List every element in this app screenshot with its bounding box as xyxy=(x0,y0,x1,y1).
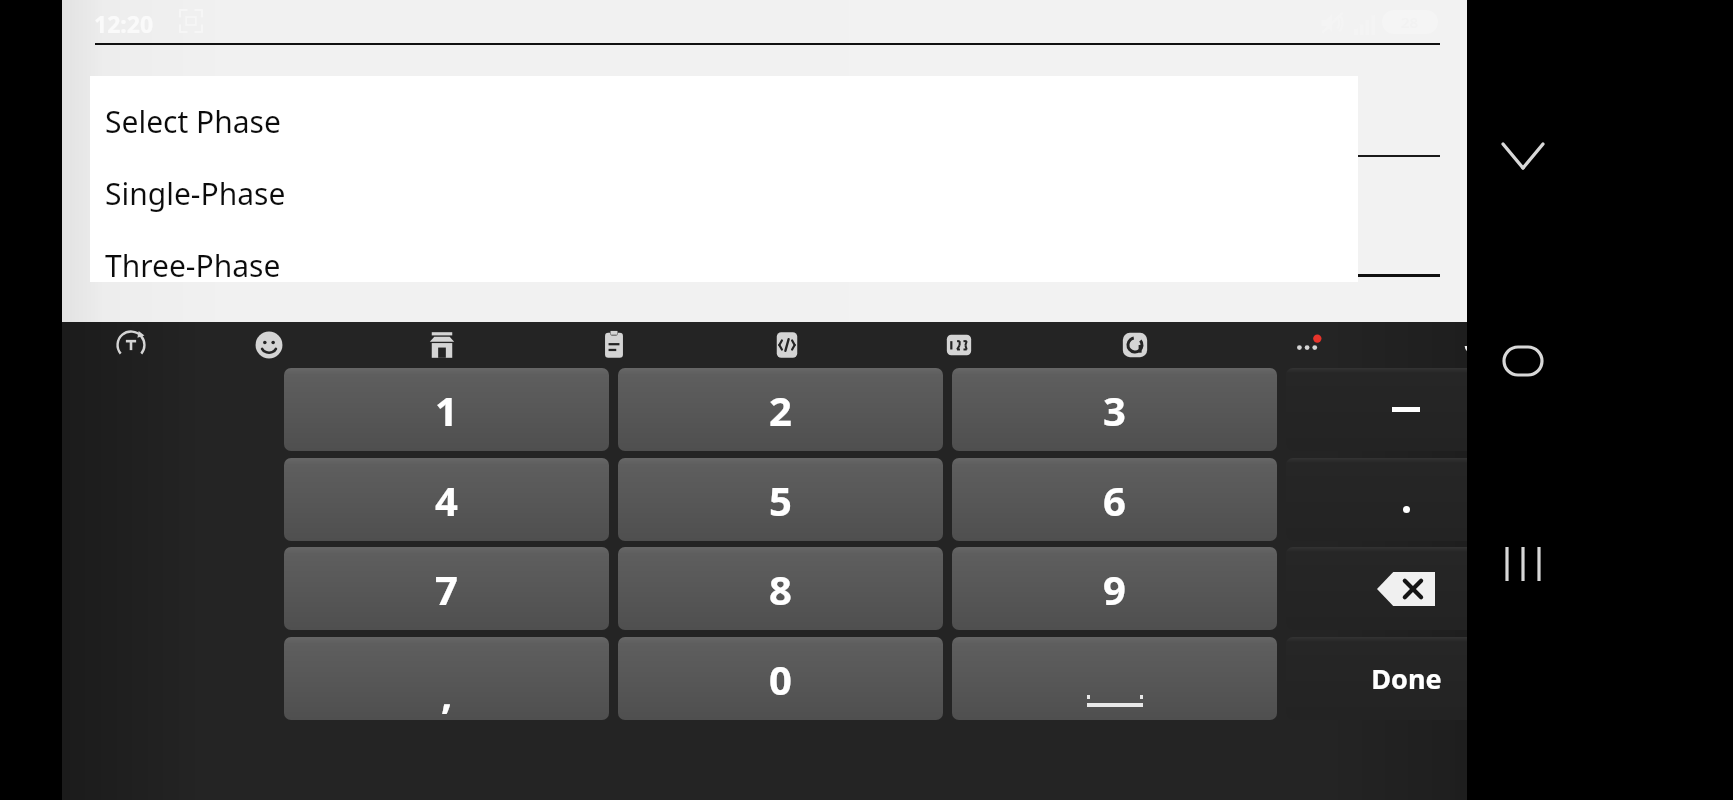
button[interactable]: Home xyxy=(1487,325,1559,397)
button[interactable]: 7 xyxy=(284,547,609,630)
staticText: 2 xyxy=(769,383,792,437)
button[interactable]: Numbers xyxy=(938,324,980,366)
button[interactable] xyxy=(1286,368,1526,451)
button[interactable]: Assistant xyxy=(1114,324,1156,366)
button[interactable]: 1 xyxy=(284,368,609,451)
button[interactable]: Space xyxy=(952,637,1277,720)
staticText: 9 xyxy=(1103,562,1126,616)
staticText: 3 xyxy=(1103,383,1126,437)
staticText: Done xyxy=(1371,660,1442,697)
button[interactable]: Clipboard xyxy=(593,324,635,366)
button[interactable]: 6 xyxy=(952,458,1277,541)
button[interactable]: Emoji xyxy=(248,324,290,366)
button[interactable]: Single-Phase xyxy=(90,164,1358,222)
button[interactable]: Voice input xyxy=(1454,324,1496,366)
button[interactable]: , xyxy=(284,637,609,720)
button[interactable]: Translate xyxy=(110,324,152,366)
button[interactable]: 2 xyxy=(618,368,943,451)
button[interactable]: 5 xyxy=(618,458,943,541)
button[interactable] xyxy=(1286,458,1526,541)
staticText: 0 xyxy=(769,652,792,706)
staticText: 6 xyxy=(1103,473,1126,527)
button[interactable]: Select Phase xyxy=(90,92,1358,150)
button[interactable]: Store xyxy=(421,324,463,366)
staticText: Single-Phase xyxy=(105,173,286,214)
staticText: Three-Phase xyxy=(105,245,281,286)
button[interactable]: Three-Phase xyxy=(90,236,1358,294)
button[interactable]: Text editing xyxy=(766,324,808,366)
staticText: 12:20 xyxy=(94,8,154,39)
staticText: 7 xyxy=(435,562,458,616)
button[interactable]: Done xyxy=(1286,637,1526,720)
staticText: 5 xyxy=(769,473,792,527)
staticText: 8 xyxy=(769,562,792,616)
button[interactable]: More options xyxy=(1288,324,1330,366)
button[interactable]: Recent apps xyxy=(1487,528,1559,600)
staticText: 1 xyxy=(435,383,458,437)
button[interactable]: 3 xyxy=(952,368,1277,451)
staticText: Select Phase xyxy=(105,101,281,142)
staticText: , xyxy=(441,666,453,720)
button[interactable]: 8 xyxy=(618,547,943,630)
staticText: 4 xyxy=(435,473,458,527)
button[interactable]: Back xyxy=(1487,120,1559,192)
button[interactable]: Delete xyxy=(1286,547,1526,630)
button[interactable]: 0 xyxy=(618,637,943,720)
button[interactable]: 9 xyxy=(952,547,1277,630)
button[interactable]: 4 xyxy=(284,458,609,541)
